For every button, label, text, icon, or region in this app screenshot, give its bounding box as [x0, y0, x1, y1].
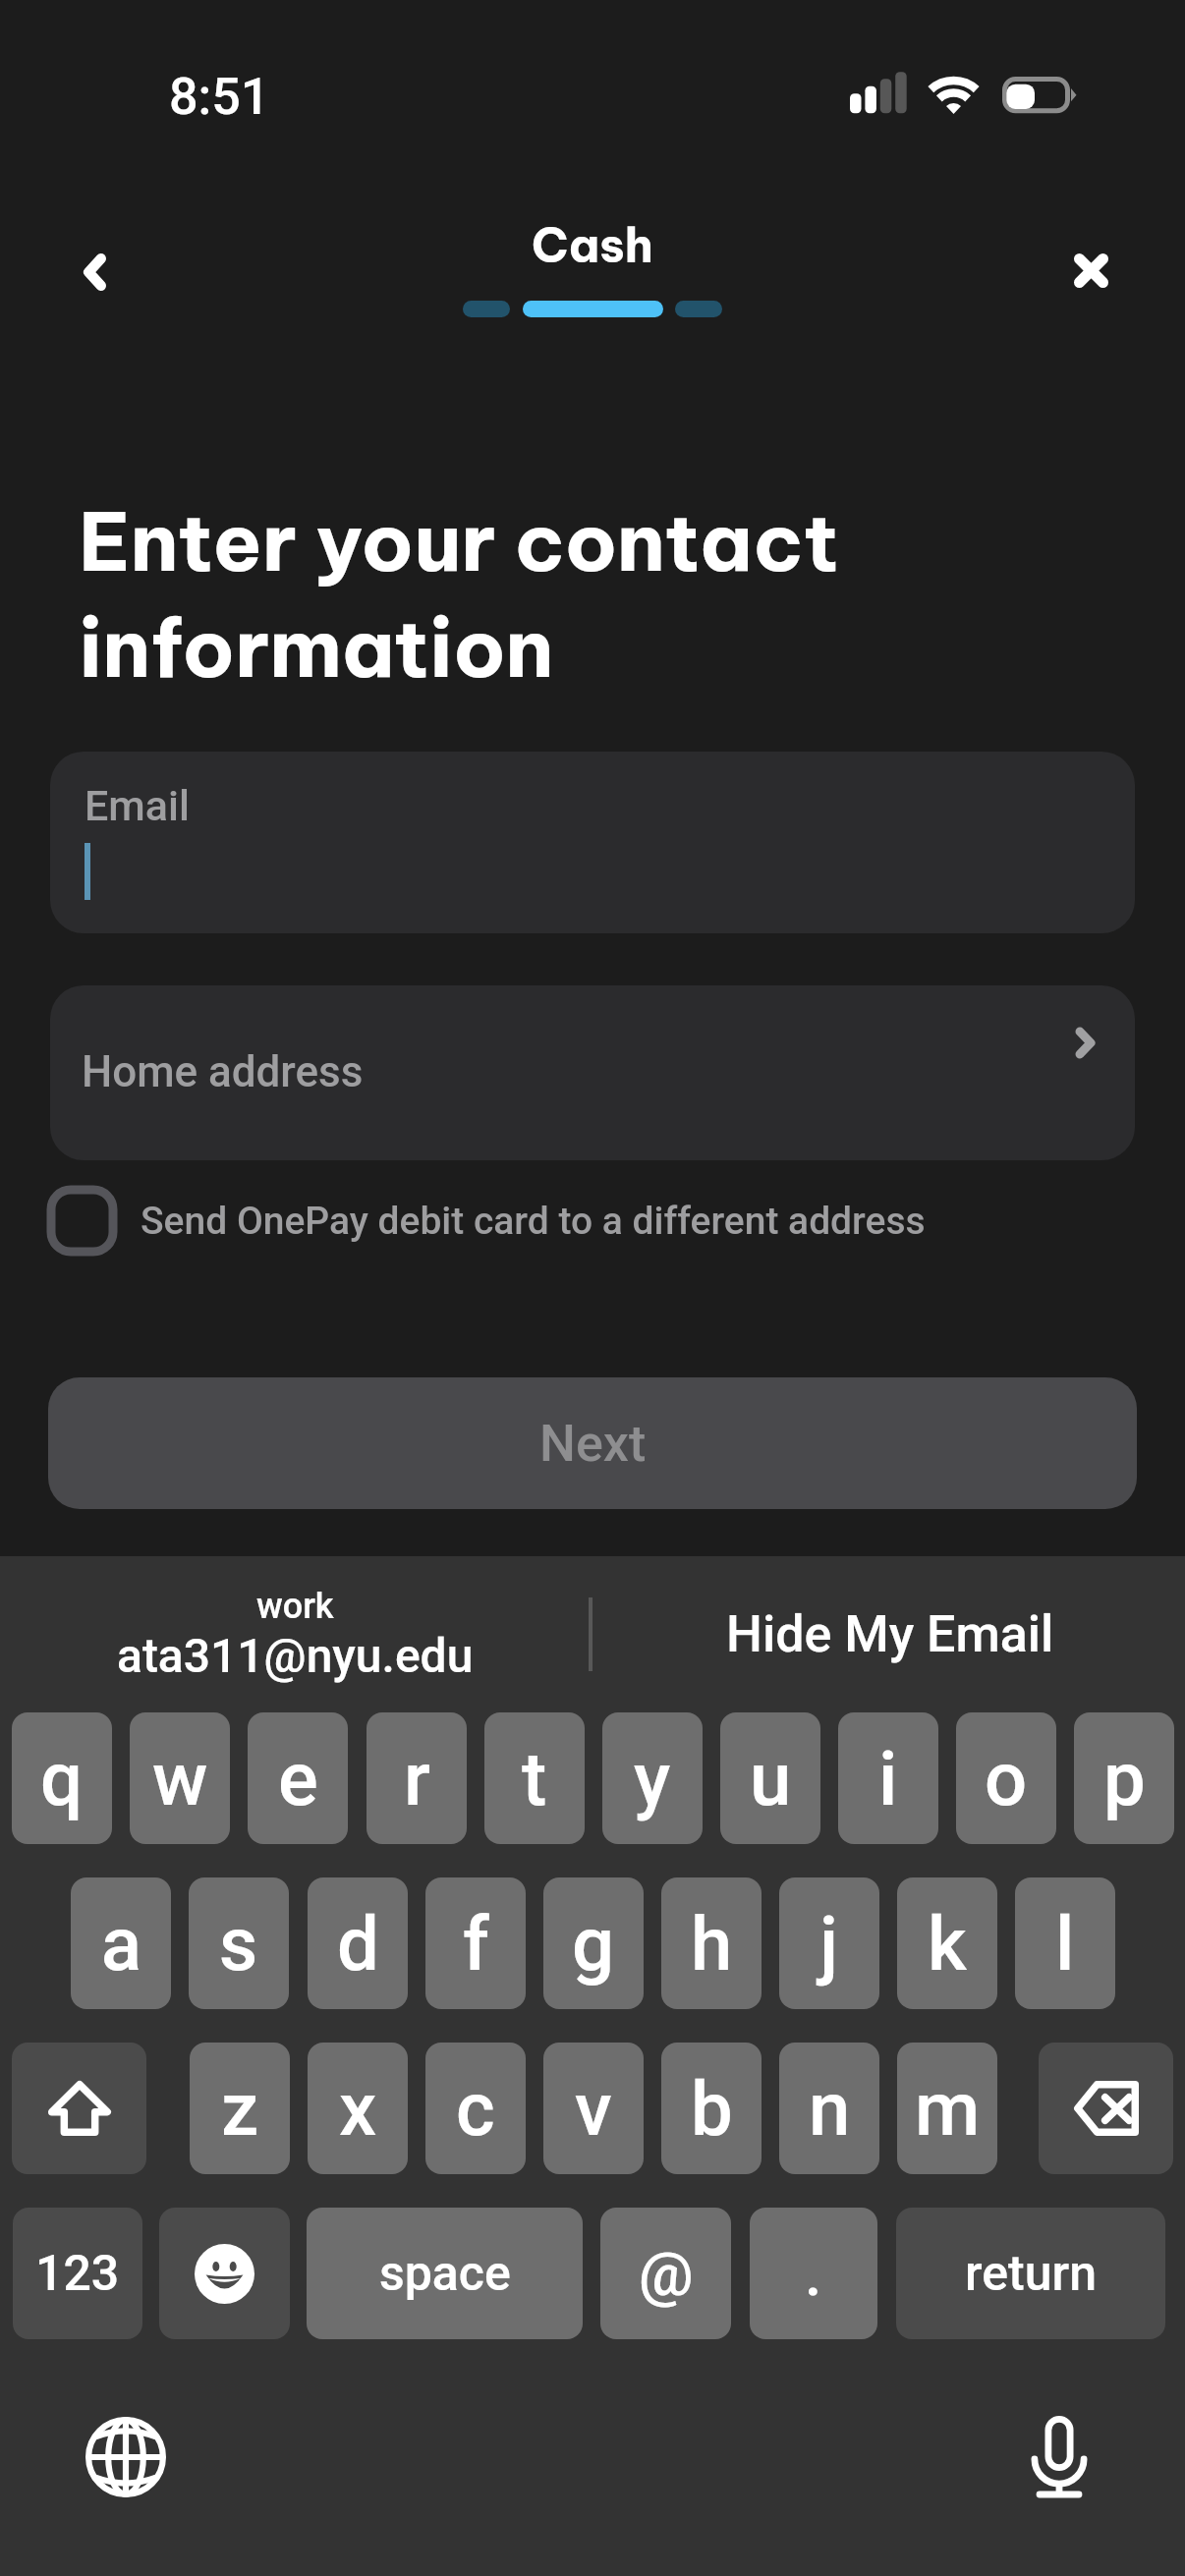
staticText: n [809, 2065, 851, 2153]
button[interactable]: Close [1037, 216, 1145, 324]
staticText: f [463, 1900, 489, 1988]
button[interactable]: k [897, 1877, 997, 2009]
button[interactable]: Back [40, 218, 148, 326]
staticText: e [278, 1735, 318, 1822]
button[interactable]: s [189, 1877, 289, 2009]
staticText: . [805, 2238, 822, 2310]
staticText: v [575, 2065, 612, 2153]
staticText: j [819, 1900, 839, 1988]
button[interactable]: f [425, 1877, 526, 2009]
button[interactable]: Change keyboard [77, 2408, 175, 2506]
staticText: r [404, 1735, 430, 1822]
button[interactable]: h [661, 1877, 762, 2009]
button[interactable]: w [130, 1712, 230, 1844]
button[interactable]: Send OnePay debit card to a different ad… [47, 1186, 926, 1256]
staticText: g [572, 1900, 615, 1988]
button[interactable]: x [308, 2043, 408, 2174]
button[interactable]: d [308, 1877, 408, 2009]
button[interactable]: Dictation [1010, 2408, 1108, 2506]
button[interactable]: space [307, 2208, 583, 2339]
button[interactable]: . [750, 2208, 877, 2339]
staticText: o [985, 1735, 1028, 1822]
button[interactable]: Backspace [1039, 2043, 1173, 2174]
staticText: u [750, 1735, 792, 1822]
button[interactable]: y [602, 1712, 703, 1844]
button[interactable]: @ [600, 2208, 731, 2339]
staticText: Send OnePay debit card to a different ad… [141, 1199, 926, 1244]
button[interactable]: z [190, 2043, 290, 2174]
button[interactable]: j [779, 1877, 879, 2009]
staticText: k [928, 1900, 967, 1988]
staticText: space [379, 2245, 511, 2303]
button[interactable]: e [248, 1712, 348, 1844]
staticText: ata311@nyu.edu [117, 1628, 474, 1683]
button[interactable]: work [0, 1586, 591, 1683]
staticText: q [40, 1735, 84, 1822]
staticText: h [691, 1900, 733, 1988]
staticText: t [522, 1735, 547, 1822]
button[interactable]: m [897, 2043, 997, 2174]
button[interactable]: t [484, 1712, 585, 1844]
staticText: Enter your contact information [79, 490, 890, 699]
button[interactable]: 123 [13, 2208, 142, 2339]
button[interactable]: g [543, 1877, 644, 2009]
button[interactable]: o [956, 1712, 1056, 1844]
staticText: i [878, 1735, 898, 1822]
staticText: @ [639, 2238, 694, 2310]
staticText: Email [85, 781, 190, 830]
staticText: y [634, 1735, 671, 1822]
staticText: p [1103, 1735, 1146, 1822]
staticText: l [1055, 1900, 1075, 1988]
staticText: z [221, 2065, 259, 2153]
button[interactable]: Shift [12, 2043, 146, 2174]
staticText: c [456, 2065, 495, 2153]
staticText: b [691, 2065, 733, 2153]
staticText: work [256, 1586, 334, 1627]
staticText: return [965, 2245, 1097, 2303]
staticText: 8:51 [169, 67, 270, 127]
button[interactable]: i [838, 1712, 938, 1844]
staticText: 123 [35, 2245, 120, 2303]
button[interactable]: r [367, 1712, 467, 1844]
button[interactable]: b [661, 2043, 762, 2174]
button[interactable]: u [720, 1712, 820, 1844]
button[interactable]: c [425, 2043, 526, 2174]
button[interactable]: Next [48, 1377, 1137, 1509]
staticText: m [915, 2065, 981, 2153]
staticText: s [219, 1900, 258, 1988]
button[interactable]: Hide My Email [594, 1604, 1185, 1664]
staticText: a [101, 1900, 141, 1988]
staticText: x [339, 2065, 377, 2153]
button[interactable]: q [12, 1712, 112, 1844]
button[interactable]: n [779, 2043, 879, 2174]
staticText: Cash [532, 215, 653, 275]
staticText: Hide My Email [726, 1604, 1054, 1664]
button[interactable]: Email [50, 752, 1135, 933]
button[interactable]: Emoji [159, 2208, 290, 2339]
button[interactable]: return [896, 2208, 1165, 2339]
staticText: Home address [82, 1046, 364, 1097]
staticText: Next [539, 1414, 647, 1474]
button[interactable]: Home address [50, 985, 1135, 1160]
button[interactable]: a [71, 1877, 171, 2009]
staticText: d [337, 1900, 379, 1988]
staticText: w [152, 1735, 208, 1822]
button[interactable]: l [1015, 1877, 1115, 2009]
button[interactable]: v [543, 2043, 644, 2174]
button[interactable]: p [1074, 1712, 1174, 1844]
